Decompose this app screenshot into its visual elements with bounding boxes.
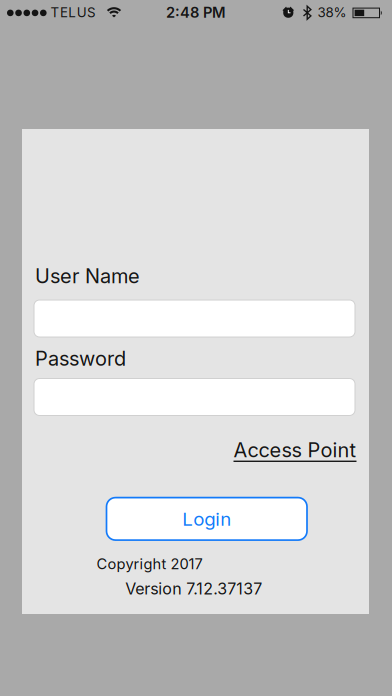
button[interactable]: Access Point — [136, 437, 356, 463]
staticText: Login — [182, 508, 231, 530]
staticText: 2:48 PM — [166, 4, 226, 21]
staticText: 38% — [317, 5, 346, 20]
button[interactable]: Login — [106, 498, 307, 540]
staticText: TELUS — [50, 5, 96, 20]
staticText: Password — [35, 347, 126, 370]
button[interactable]: Password text field — [34, 378, 355, 415]
staticText: Copyright 2017 — [96, 555, 202, 573]
button[interactable]: User Name text field — [34, 300, 355, 337]
staticText: Access Point — [233, 438, 356, 462]
staticText: Version 7.12.37137 — [125, 579, 262, 598]
staticText: User Name — [35, 264, 140, 288]
